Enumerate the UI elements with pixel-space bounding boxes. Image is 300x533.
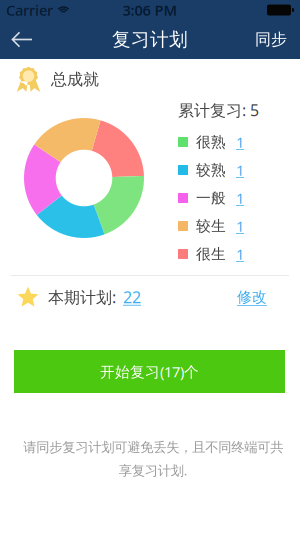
- button[interactable]: Back: [0, 20, 44, 58]
- staticText: 复习计划: [112, 28, 188, 51]
- staticText: 一般: [196, 189, 226, 207]
- button[interactable]: 1: [236, 129, 258, 155]
- button[interactable]: 开始复习(17)个: [14, 350, 285, 393]
- staticText: 很生: [196, 245, 226, 263]
- staticText: 3:06 PM: [122, 0, 177, 20]
- staticText: 累计复习: 5: [178, 99, 259, 121]
- button[interactable]: 修改: [237, 285, 267, 309]
- staticText: 请同步复习计划可避免丢失，且不同终端可共享复习计划.: [23, 439, 283, 479]
- button[interactable]: 1: [236, 185, 258, 211]
- staticText: 1: [236, 188, 244, 208]
- staticText: Carrier: [6, 0, 53, 20]
- button[interactable]: 同步: [242, 20, 300, 58]
- staticText: 1: [236, 244, 244, 264]
- staticText: 修改: [237, 288, 267, 306]
- staticText: 22: [123, 286, 141, 308]
- button[interactable]: 1: [236, 241, 258, 267]
- staticText: 1: [236, 160, 244, 180]
- staticText: 1: [236, 132, 244, 152]
- button[interactable]: 22: [116, 285, 141, 309]
- staticText: 总成就: [51, 70, 99, 89]
- button[interactable]: 1: [236, 213, 258, 239]
- staticText: 较生: [196, 217, 226, 235]
- button[interactable]: 1: [236, 157, 258, 183]
- staticText: 开始复习(17)个: [100, 362, 199, 381]
- staticText: 同步: [255, 30, 287, 49]
- staticText: 很熟: [196, 133, 226, 151]
- staticText: 本期计划:: [48, 286, 116, 308]
- staticText: 1: [236, 216, 244, 236]
- staticText: 较熟: [196, 161, 226, 179]
